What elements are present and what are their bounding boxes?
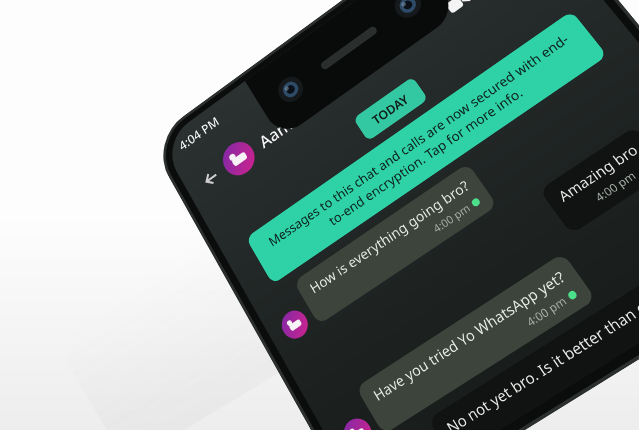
button[interactable]: Aami AirTel <box>255 81 341 153</box>
staticText: Have you tried Yo WhatsApp yet? <box>369 266 569 405</box>
button[interactable]: Messages to this chat and calls are now … <box>245 11 608 284</box>
button[interactable]: Video call <box>428 0 486 31</box>
button[interactable]: Back <box>191 155 233 201</box>
button[interactable]: Voice call <box>463 0 522 6</box>
staticText: 4:00 pm <box>430 200 473 236</box>
staticText: 4:00 pm <box>592 167 639 205</box>
staticText: Messages to this chat and calls are now … <box>262 28 588 268</box>
staticText: 4:04 PM <box>176 112 223 154</box>
button[interactable]: Amazing bro <box>539 126 639 234</box>
staticText: How is everything going bro? <box>306 176 473 298</box>
staticText: Amazing bro <box>554 139 639 206</box>
staticText: 4:00 pm <box>523 292 569 330</box>
button[interactable]: How is everything going bro? <box>293 163 498 325</box>
button[interactable]: No not yet bro. Is it better than gbwhat… <box>428 234 639 430</box>
button[interactable]: TODAY <box>353 76 428 141</box>
staticText: TODAY <box>369 90 412 128</box>
button[interactable]: Have you tried Yo WhatsApp yet? <box>356 252 596 430</box>
staticText: No not yet bro. Is it better than gbwhat… <box>442 248 639 430</box>
